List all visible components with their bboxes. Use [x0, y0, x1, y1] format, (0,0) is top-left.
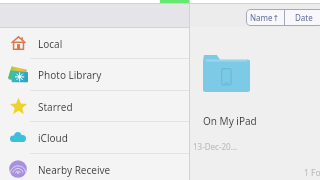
staticText: Local: [38, 37, 63, 51]
staticText: Date: [295, 12, 313, 23]
other: Photo Library: [8, 66, 28, 83]
button[interactable]: Photo Library: [0, 59, 189, 91]
button[interactable]: Nearby Receive: [0, 154, 189, 180]
other: Nearby Receive: [9, 160, 27, 178]
button[interactable]: Name↑: [246, 9, 284, 26]
button[interactable]: Local: [0, 28, 189, 59]
button[interactable]: iCloud: [0, 122, 189, 154]
staticText: Name↑: [250, 12, 280, 23]
button[interactable]: On My iPad: [203, 55, 257, 128]
other: Starred: [10, 98, 27, 114]
button[interactable]: Starred: [0, 91, 189, 122]
other: Local: [11, 36, 26, 50]
staticText: Photo Library: [38, 68, 102, 82]
staticText: 13-Dec-20…: [193, 141, 237, 152]
staticText: 1 Fo: [304, 167, 320, 179]
staticText: Nearby Receive: [38, 163, 111, 177]
staticText: iCloud: [38, 131, 68, 145]
button[interactable]: Date: [285, 9, 320, 26]
staticText: On My iPad: [203, 114, 257, 128]
staticText: Starred: [38, 100, 73, 114]
other: iCloud: [10, 132, 26, 142]
